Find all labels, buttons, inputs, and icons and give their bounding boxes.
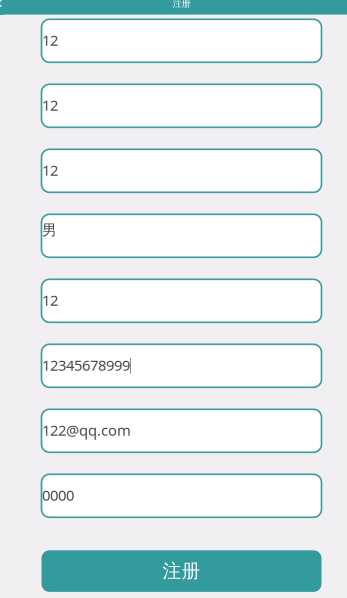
staticText: 12345678999 [42, 355, 130, 375]
button[interactable]: 注册 [41, 550, 321, 592]
button[interactable]: 12 [41, 19, 321, 62]
staticText: 12 [42, 160, 58, 180]
staticText: 122@qq.com [42, 420, 131, 440]
button[interactable]: 12 [41, 279, 321, 322]
staticText: 12 [42, 95, 58, 115]
button[interactable]: 12345678999 [41, 344, 321, 387]
staticText: 男 [42, 221, 57, 239]
button[interactable]: 122@qq.com [41, 409, 321, 452]
staticText: 0000 [42, 485, 74, 505]
staticText: 12 [42, 30, 58, 50]
staticText: 12 [42, 290, 58, 310]
button[interactable]: 男 [41, 214, 321, 257]
staticText: 注册 [172, 0, 190, 9]
button[interactable]: Back [0, 0, 4, 15]
button[interactable]: 12 [41, 149, 321, 192]
button[interactable]: 0000 [41, 474, 321, 517]
button[interactable]: 12 [41, 84, 321, 127]
staticText: 注册 [162, 559, 200, 583]
